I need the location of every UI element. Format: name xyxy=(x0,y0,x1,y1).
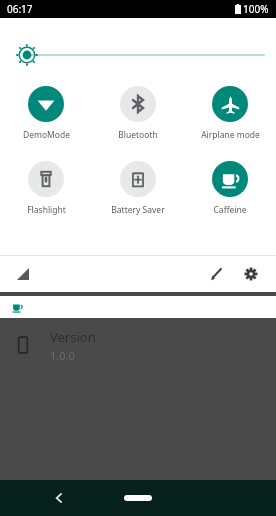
staticText: DemoMode xyxy=(23,129,70,141)
button[interactable]: Battery Saver xyxy=(92,161,184,216)
staticText: Flashlight xyxy=(27,204,66,216)
button[interactable]: Home xyxy=(124,495,152,501)
staticText: Caffeine xyxy=(213,204,247,216)
staticText: 06:17 xyxy=(7,2,33,16)
staticText: Bluetooth xyxy=(118,129,158,141)
button[interactable]: Signal xyxy=(12,263,34,285)
button[interactable]: Caffeine xyxy=(184,161,276,216)
button[interactable]: Edit xyxy=(204,261,230,287)
staticText: Airplane mode xyxy=(201,129,260,141)
button[interactable]: Brightness xyxy=(0,38,276,72)
button[interactable]: Back xyxy=(46,485,72,511)
button[interactable]: Settings xyxy=(238,261,264,287)
button[interactable]: Flashlight xyxy=(0,161,92,216)
button[interactable]: Bluetooth xyxy=(92,86,184,141)
button[interactable]: Airplane mode xyxy=(184,86,276,141)
staticText: 100% xyxy=(243,2,269,16)
button[interactable]: DemoMode xyxy=(0,86,92,141)
staticText: Battery Saver xyxy=(111,204,165,216)
button[interactable] xyxy=(0,296,276,318)
staticText: 1.0.0 xyxy=(50,348,75,363)
staticText: Version xyxy=(50,328,96,346)
